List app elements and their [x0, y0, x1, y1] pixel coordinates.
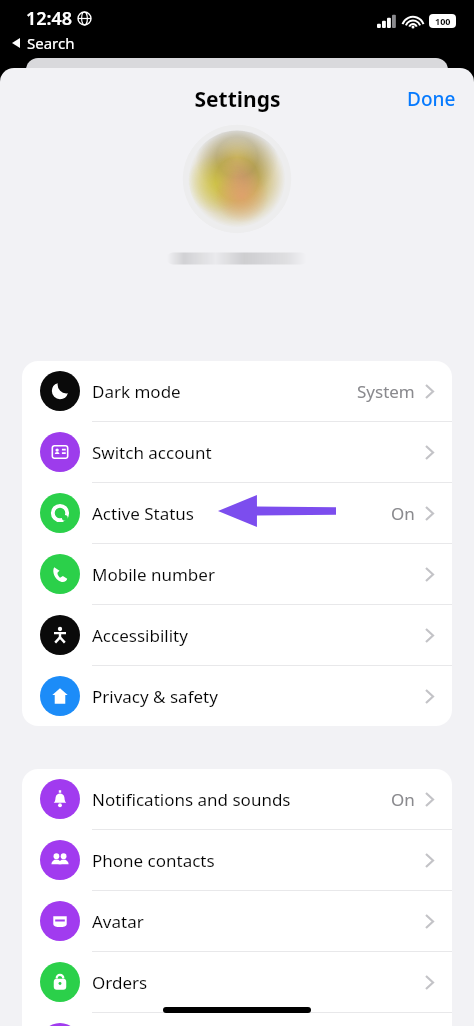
button[interactable]: Done [389, 76, 474, 122]
button[interactable]: Switch account [22, 422, 452, 482]
button[interactable]: Photos and media [22, 1013, 452, 1026]
staticText: 12:48 [26, 6, 73, 31]
staticText: 100 [435, 15, 451, 27]
staticText: Phone contacts [92, 849, 215, 872]
staticText: Switch account [92, 441, 212, 464]
staticText: Search [27, 33, 75, 53]
button[interactable]: Mobile number [22, 544, 452, 604]
button[interactable]: Avatar [22, 891, 452, 951]
staticText: Active Status [92, 502, 194, 525]
staticText: Settings [194, 85, 281, 114]
staticText: Privacy & safety [92, 685, 218, 708]
staticText: Accessibility [92, 624, 188, 647]
button[interactable]: Orders [22, 952, 452, 1012]
staticText: Done [407, 86, 456, 112]
staticText: On [391, 788, 415, 811]
staticText: Mobile number [92, 563, 215, 586]
staticText: Dark mode [92, 380, 181, 403]
button[interactable]: Accessibility [22, 605, 452, 665]
staticText: Notifications and sounds [92, 788, 291, 811]
other: Annotation arrow pointing to Active Stat… [218, 492, 336, 530]
button[interactable]: Active Status [22, 483, 452, 543]
staticText: System [357, 380, 415, 403]
button[interactable]: Phone contacts [22, 830, 452, 890]
button[interactable]: Dark mode [22, 361, 452, 421]
button[interactable]: Privacy & safety [22, 666, 452, 726]
button[interactable]: Notifications and sounds [22, 769, 452, 829]
staticText: Orders [92, 971, 148, 994]
staticText: On [391, 502, 415, 525]
staticText: Avatar [92, 910, 144, 933]
